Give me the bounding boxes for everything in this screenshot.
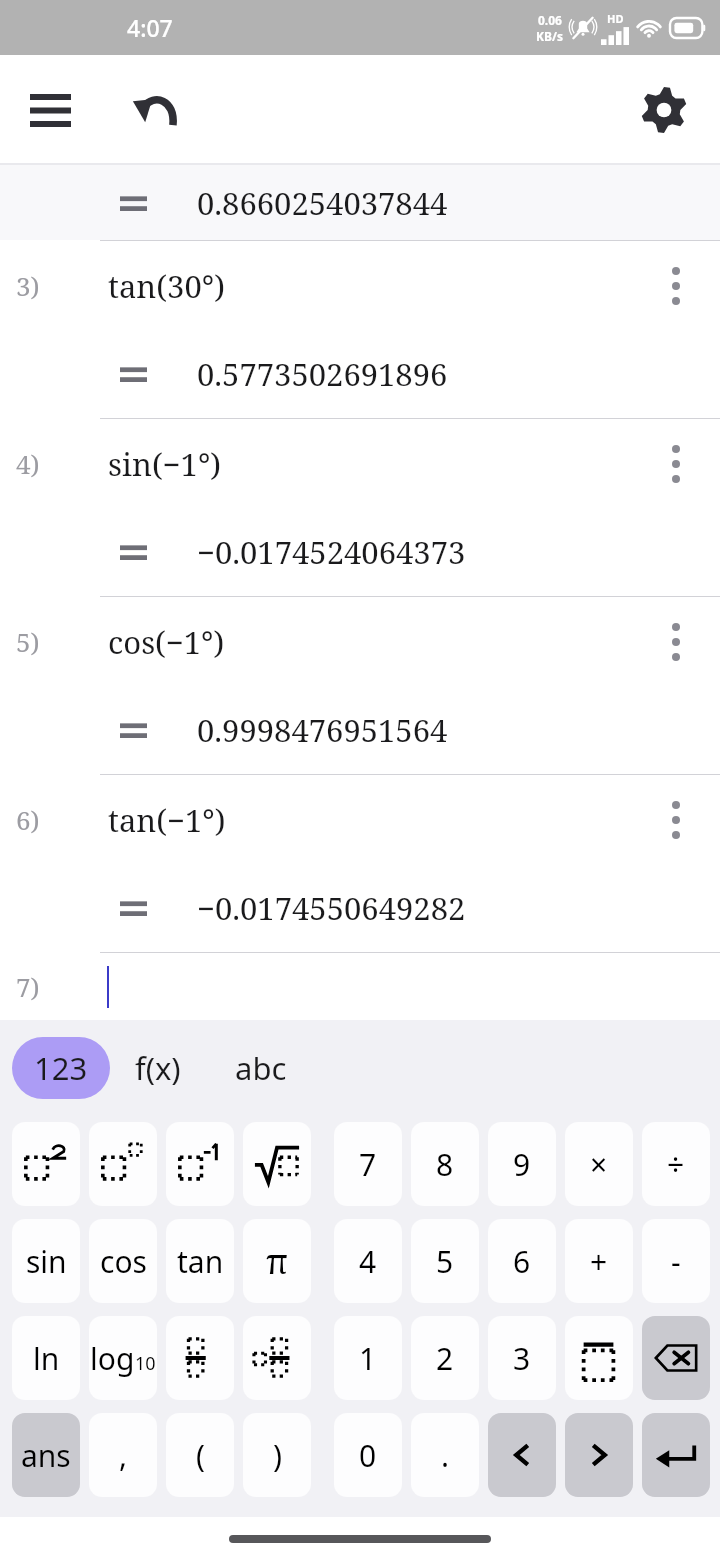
staticText: tan(30°) — [108, 265, 225, 307]
staticText: 4 — [359, 1241, 377, 1282]
button[interactable]: + — [565, 1219, 633, 1303]
staticText: abc — [235, 1047, 287, 1089]
button[interactable]: 6 — [488, 1219, 556, 1303]
staticText: 8 — [436, 1144, 454, 1185]
button[interactable]: Move left — [488, 1413, 556, 1497]
staticText: 1 — [359, 1338, 377, 1379]
button[interactable]: Fraction — [166, 1316, 234, 1400]
button[interactable]: More options — [648, 792, 704, 848]
button[interactable]: Repeating decimal — [565, 1316, 633, 1400]
staticText: ) — [273, 1435, 282, 1476]
staticText: 7 — [359, 1144, 377, 1185]
staticText: cos — [100, 1241, 147, 1282]
staticText: 9 — [513, 1144, 531, 1185]
staticText: 0.9998476951564 — [197, 709, 448, 751]
staticText: tan(−1°) — [108, 799, 226, 841]
button[interactable]: log — [89, 1316, 157, 1400]
staticText: - — [671, 1241, 681, 1282]
staticText: 3) — [16, 268, 40, 303]
button[interactable]: More options — [648, 258, 704, 314]
button[interactable]: 4) — [0, 418, 720, 596]
staticText: 5 — [436, 1241, 454, 1282]
button[interactable]: cos — [89, 1219, 157, 1303]
button[interactable]: f(x) — [110, 1037, 206, 1099]
button[interactable]: 9 — [488, 1122, 556, 1206]
button[interactable]: 8 — [411, 1122, 479, 1206]
button[interactable]: 5 — [411, 1219, 479, 1303]
staticText: 6) — [16, 802, 40, 837]
staticText: 0.5773502691896 — [197, 353, 448, 395]
button[interactable]: 4 — [334, 1219, 402, 1303]
button[interactable]: ln — [12, 1316, 80, 1400]
button[interactable]: tan — [166, 1219, 234, 1303]
staticText: f(x) — [135, 1047, 181, 1089]
button[interactable]: Backspace — [642, 1316, 710, 1400]
staticText: KB/s — [536, 28, 563, 44]
button[interactable]: 0 — [334, 1413, 402, 1497]
staticText: × — [590, 1144, 608, 1185]
button[interactable]: Square — [12, 1122, 80, 1206]
button[interactable]: ) — [243, 1413, 311, 1497]
staticText: cos(−1°) — [108, 621, 225, 663]
staticText: 7) — [16, 969, 40, 1004]
button[interactable]: sin — [12, 1219, 80, 1303]
staticText: sin(−1°) — [108, 443, 222, 485]
staticText: 3 — [513, 1338, 531, 1379]
staticText: . — [441, 1435, 450, 1476]
button[interactable]: 5) — [0, 596, 720, 774]
staticText: −0.0174550649282 — [197, 887, 466, 929]
staticText: 4) — [16, 446, 40, 481]
button[interactable]: Menu — [14, 74, 86, 146]
staticText: π — [266, 1238, 289, 1284]
button[interactable]: ( — [166, 1413, 234, 1497]
button[interactable]: 7) — [0, 952, 720, 1020]
button[interactable]: Power — [89, 1122, 157, 1206]
button[interactable]: Move right — [565, 1413, 633, 1497]
staticText: sin — [26, 1241, 67, 1282]
staticText: −0.0174524064373 — [197, 531, 466, 573]
button[interactable]: × — [565, 1122, 633, 1206]
button[interactable]: Square root — [243, 1122, 311, 1206]
button[interactable]: Mixed number — [243, 1316, 311, 1400]
staticText: , — [119, 1435, 128, 1476]
button[interactable]: Undo — [118, 74, 190, 146]
staticText: HD — [607, 11, 624, 26]
staticText: 0.8660254037844 — [197, 182, 448, 224]
button[interactable]: Settings — [628, 74, 700, 146]
staticText: 2 — [436, 1338, 454, 1379]
button[interactable]: More options — [648, 614, 704, 670]
button[interactable]: 2 — [411, 1316, 479, 1400]
staticText: ln — [33, 1338, 60, 1379]
button[interactable]: 3) — [0, 240, 720, 418]
staticText: 123 — [34, 1047, 88, 1089]
staticText: ÷ — [667, 1144, 685, 1185]
button[interactable]: ans — [12, 1413, 80, 1497]
button[interactable]: 7 — [334, 1122, 402, 1206]
staticText: + — [590, 1241, 608, 1282]
button[interactable]: More options — [648, 436, 704, 492]
button[interactable]: π — [243, 1219, 311, 1303]
staticText: log — [90, 1338, 135, 1379]
staticText: 6 — [513, 1241, 531, 1282]
button[interactable]: abc — [206, 1037, 316, 1099]
button[interactable]: 1 — [334, 1316, 402, 1400]
staticText: 10 — [135, 1351, 156, 1376]
button[interactable]: Enter — [642, 1413, 710, 1497]
staticText: 0.06 — [538, 12, 562, 28]
staticText: 5) — [16, 624, 40, 659]
button[interactable]: - — [642, 1219, 710, 1303]
staticText: 0 — [359, 1435, 377, 1476]
button[interactable]: Inverse — [166, 1122, 234, 1206]
staticText: ans — [21, 1435, 71, 1476]
button[interactable]: 6) — [0, 774, 720, 952]
staticText: tan — [177, 1241, 224, 1282]
button[interactable]: , — [89, 1413, 157, 1497]
button[interactable]: 3 — [488, 1316, 556, 1400]
button[interactable]: ÷ — [642, 1122, 710, 1206]
button[interactable]: . — [411, 1413, 479, 1497]
staticText: ( — [196, 1435, 205, 1476]
button[interactable]: 123 — [12, 1037, 110, 1099]
staticText: 4:07 — [127, 12, 173, 43]
